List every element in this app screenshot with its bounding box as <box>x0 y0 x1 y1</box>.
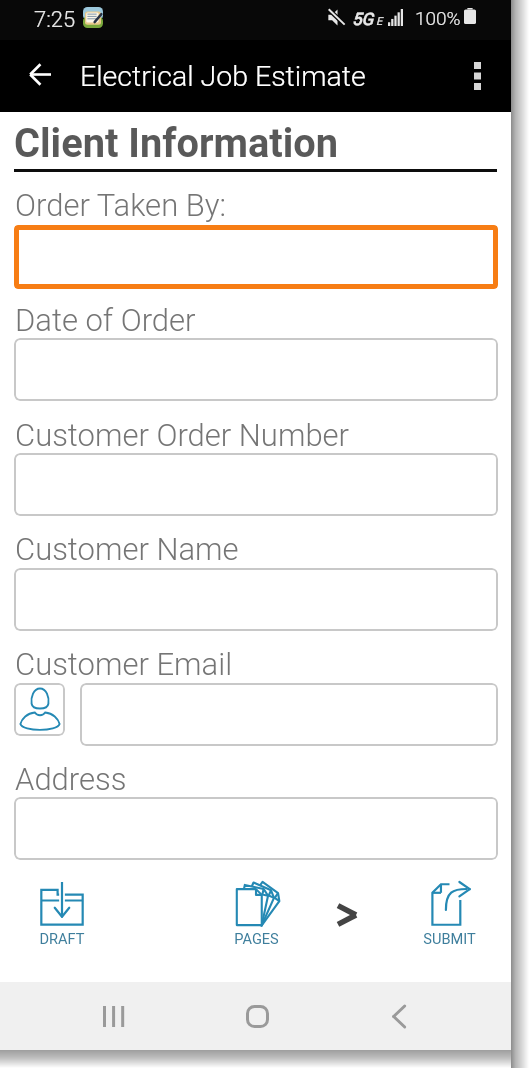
button[interactable]: Date of Order field <box>14 338 498 401</box>
button[interactable]: Next <box>330 898 364 932</box>
button[interactable]: Navigate up <box>17 52 63 98</box>
button[interactable]: Home <box>230 989 284 1043</box>
button[interactable]: Customer Name field <box>14 568 498 631</box>
staticText: Electrical Job Estimate <box>80 60 366 93</box>
staticText: E <box>376 15 383 28</box>
staticText: Address <box>15 761 127 797</box>
button[interactable]: SUBMIT <box>409 882 489 947</box>
button[interactable]: Customer Order Number field <box>14 453 498 516</box>
staticText: Client Information <box>14 120 339 167</box>
button[interactable]: Order Taken By field <box>14 225 498 289</box>
button[interactable]: PAGES <box>216 880 296 947</box>
button[interactable]: DRAFT <box>22 882 102 947</box>
staticText: 7:25 <box>34 7 76 33</box>
staticText: Order Taken By: <box>15 187 226 223</box>
staticText: Date of Order <box>15 302 196 338</box>
staticText: DRAFT <box>39 930 85 947</box>
staticText: Customer Name <box>15 531 239 567</box>
staticText: PAGES <box>234 930 279 947</box>
button[interactable]: Customer Email field <box>80 683 498 746</box>
button[interactable]: Address field <box>14 797 498 860</box>
staticText: 100% <box>415 7 461 29</box>
staticText: 5G <box>352 9 374 29</box>
button[interactable]: Back <box>372 989 426 1043</box>
staticText: Customer Order Number <box>15 417 350 453</box>
button[interactable]: Recent apps <box>86 989 140 1043</box>
button[interactable]: Choose contact <box>14 683 65 736</box>
button[interactable]: More options <box>454 53 500 99</box>
staticText: SUBMIT <box>423 930 476 947</box>
staticText: Customer Email <box>15 646 233 682</box>
